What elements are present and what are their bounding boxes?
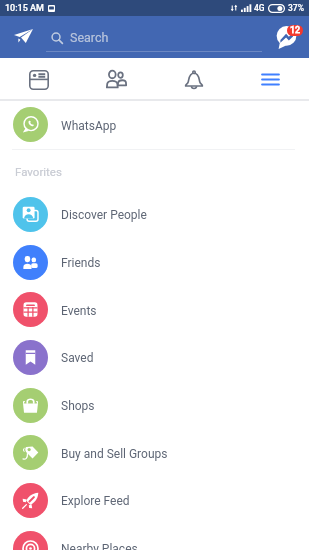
staticText: Nearby Places: [61, 542, 138, 550]
button[interactable]: Friends: [0, 238, 309, 286]
button[interactable]: Messenger: [274, 23, 305, 49]
staticText: WhatsApp: [61, 119, 117, 133]
button[interactable]: Nearby Places: [0, 524, 309, 550]
button[interactable]: Buy and Sell Groups: [0, 429, 309, 476]
staticText: Friends: [61, 256, 101, 270]
staticText: 12: [290, 25, 301, 36]
button[interactable]: Discover People: [0, 190, 309, 238]
button[interactable]: Explore Feed: [0, 476, 309, 524]
button[interactable]: Shops: [0, 381, 309, 429]
button[interactable]: Friend Requests: [78, 58, 155, 101]
button[interactable]: Search: [46, 20, 262, 54]
button[interactable]: Menu: [232, 58, 309, 101]
button[interactable]: Notifications: [155, 58, 232, 101]
staticText: Saved: [61, 351, 94, 365]
button[interactable]: Events: [0, 286, 309, 333]
button[interactable]: WhatsApp: [0, 101, 309, 148]
staticText: Explore Feed: [61, 494, 130, 508]
staticText: 37%: [288, 3, 304, 13]
staticText: Discover People: [61, 208, 147, 222]
button[interactable]: News Feed: [0, 58, 78, 101]
staticText: Search: [70, 30, 109, 45]
staticText: Favorites: [15, 165, 62, 178]
staticText: Events: [61, 304, 97, 318]
button[interactable]: Send: [9, 23, 37, 51]
staticText: 10:15 AM: [5, 3, 44, 14]
staticText: Buy and Sell Groups: [61, 447, 168, 461]
staticText: Shops: [61, 399, 95, 413]
button[interactable]: Saved: [0, 333, 309, 381]
staticText: 4G: [254, 3, 265, 13]
